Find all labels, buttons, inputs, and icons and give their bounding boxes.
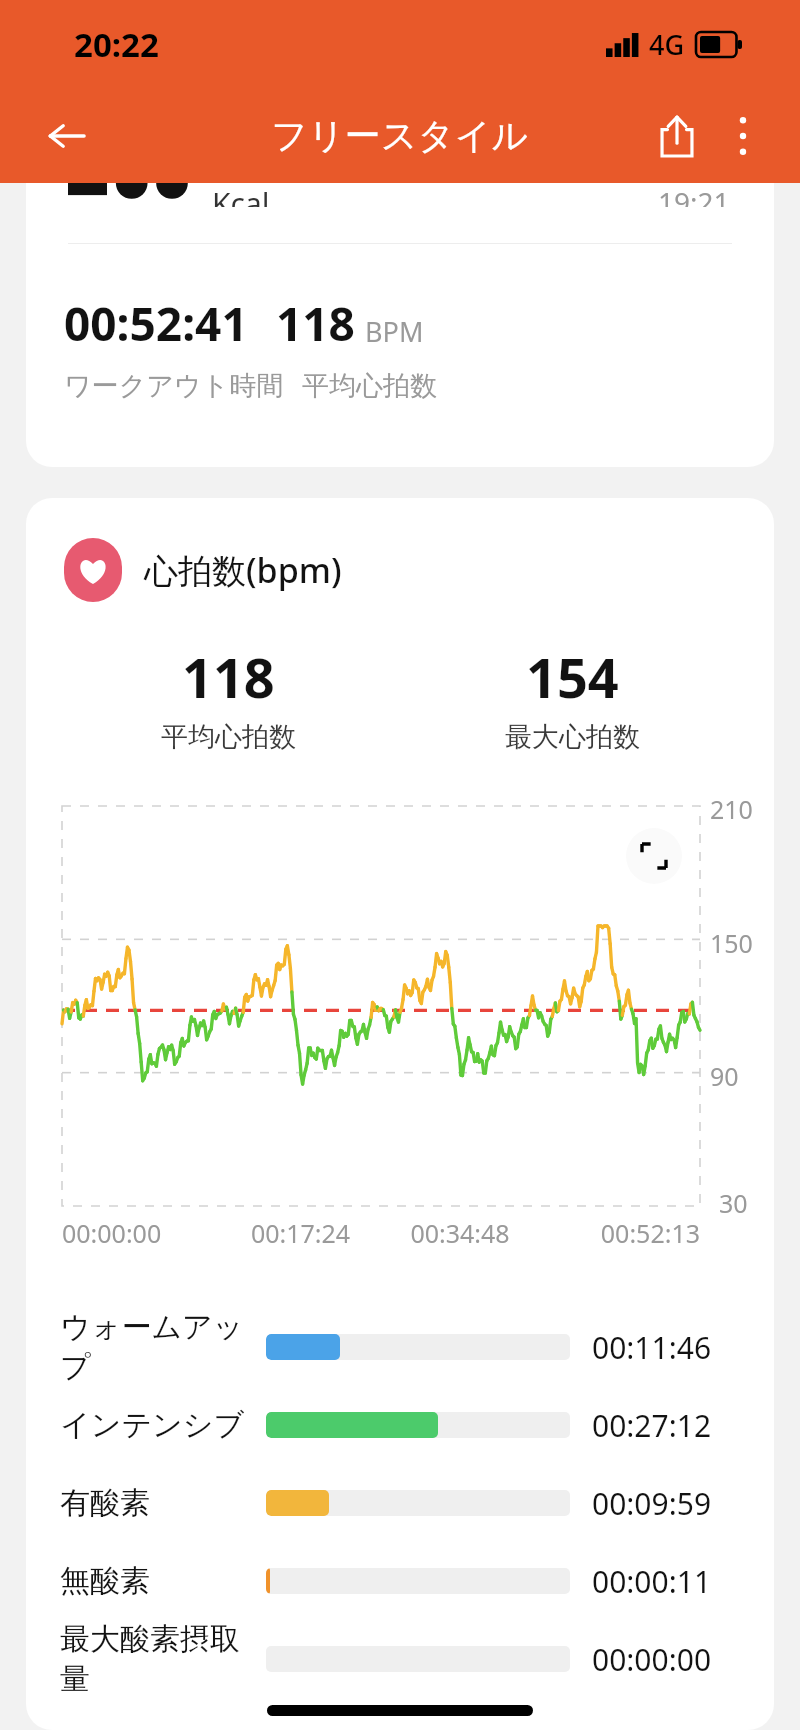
button[interactable]: 無酸素 [60, 1542, 740, 1620]
staticText: 20:22 [74, 22, 159, 67]
button[interactable]: 心拍数(bpm) [26, 498, 774, 1730]
staticText: 00:00:00 [62, 1216, 221, 1250]
staticText: 00:00:11 [592, 1561, 712, 1602]
staticText: 00:52:41 [64, 292, 248, 355]
staticText: 00:52:13 [540, 1216, 700, 1250]
button[interactable]: 最大酸素摂取量 [60, 1620, 740, 1698]
staticText: 30 [719, 1186, 748, 1220]
staticText: 最大酸素摂取量 [60, 1620, 266, 1698]
button[interactable]: インテンシブ [60, 1386, 740, 1464]
staticText: 00:17:24 [221, 1216, 380, 1250]
staticText: 心拍数(bpm) [144, 547, 342, 593]
button[interactable]: Share [644, 103, 710, 169]
staticText: 154 [526, 640, 619, 714]
staticText: 19:21 [658, 183, 730, 207]
staticText: Kcal [212, 183, 270, 207]
staticText: インテンシブ [60, 1406, 245, 1444]
staticText: 118 [182, 640, 275, 714]
staticText: ウォームアップ [60, 1308, 266, 1386]
staticText: 150 [710, 926, 753, 960]
button[interactable]: Kcal [26, 183, 774, 467]
button[interactable]: ウォームアップ [60, 1308, 740, 1386]
staticText: 4G [649, 26, 685, 63]
button[interactable]: 有酸素 [60, 1464, 740, 1542]
staticText: 無酸素 [60, 1562, 150, 1600]
staticText: 平均心拍数 [161, 720, 296, 754]
staticText: 00:09:59 [592, 1483, 712, 1524]
staticText: 00:27:12 [592, 1405, 712, 1446]
staticText: 90 [710, 1059, 739, 1093]
staticText: 00:34:48 [380, 1216, 540, 1250]
staticText: 210 [710, 792, 753, 826]
staticText: 118 [276, 292, 355, 355]
button[interactable]: Back [36, 105, 98, 167]
staticText: ワークアウト時間 [64, 369, 284, 403]
staticText: 平均心拍数 [302, 369, 437, 403]
button[interactable]: More options [710, 103, 776, 169]
staticText: 00:11:46 [592, 1327, 712, 1368]
staticText: BPM [365, 313, 424, 350]
staticText: フリースタイル [271, 113, 529, 158]
staticText: 00:00:00 [592, 1639, 712, 1680]
staticText: 最大心拍数 [505, 720, 640, 754]
button[interactable]: Expand chart [626, 828, 682, 884]
staticText: 有酸素 [60, 1484, 150, 1522]
